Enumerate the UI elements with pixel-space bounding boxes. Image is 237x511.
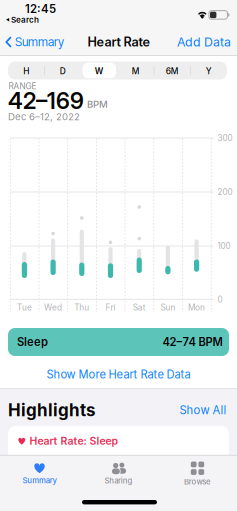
staticText: Fri	[105, 302, 115, 312]
button[interactable]: Sleep	[8, 328, 229, 356]
staticText: BPM	[87, 98, 108, 110]
staticText: Add Data	[177, 35, 231, 49]
staticText: 6M	[166, 66, 179, 76]
staticText: 42–169	[8, 87, 84, 114]
staticText: Heart Rate	[87, 34, 149, 50]
staticText: Summary	[22, 476, 57, 485]
button[interactable]: Show All	[179, 403, 226, 417]
button[interactable]: Y	[191, 62, 227, 80]
button[interactable]: Sharing	[79, 457, 158, 491]
staticText: Sat	[133, 302, 146, 312]
staticText: Y	[206, 66, 212, 76]
staticText: 100	[217, 241, 230, 251]
staticText: W	[95, 66, 104, 76]
button[interactable]: Summary	[0, 457, 79, 491]
staticText: 12:45	[25, 2, 56, 16]
button[interactable]: Show More Heart Rate Data	[46, 368, 190, 381]
staticText: 0	[217, 294, 222, 304]
staticText: 300	[217, 133, 232, 143]
staticText: H	[23, 66, 29, 76]
button[interactable]: Add Data	[177, 35, 231, 49]
staticText: Thu	[74, 302, 89, 312]
staticText: M	[132, 66, 140, 76]
staticText: 200	[217, 187, 232, 197]
staticText: Sleep	[17, 335, 48, 349]
staticText: Show All	[179, 403, 226, 417]
staticText: RANGE	[8, 81, 36, 91]
staticText: Sharing	[104, 476, 133, 485]
staticText: Summary	[15, 35, 64, 49]
button[interactable]: Heart Rate: Sleep	[8, 432, 229, 450]
staticText: Show More Heart Rate Data	[46, 368, 190, 381]
staticText: Mon	[188, 302, 205, 312]
button[interactable]: Browse	[158, 457, 237, 491]
button[interactable]: W	[81, 62, 117, 80]
button[interactable]: Summary	[5, 35, 64, 49]
staticText: Sun	[160, 302, 175, 312]
button[interactable]: M	[118, 62, 154, 80]
staticText: 42–74 BPM	[162, 335, 222, 349]
staticText: Tue	[17, 302, 32, 312]
staticText: Heart Rate: Sleep	[29, 435, 118, 447]
staticText: Wed	[44, 302, 62, 312]
button[interactable]: H	[8, 62, 44, 80]
button[interactable]: 6M	[154, 62, 190, 80]
staticText: Dec 6–12, 2022	[8, 111, 80, 123]
staticText: D	[60, 66, 66, 76]
staticText: Highlights	[8, 400, 95, 420]
staticText: Search	[11, 15, 39, 25]
staticText: Browse	[184, 477, 211, 486]
button[interactable]: D	[45, 62, 81, 80]
